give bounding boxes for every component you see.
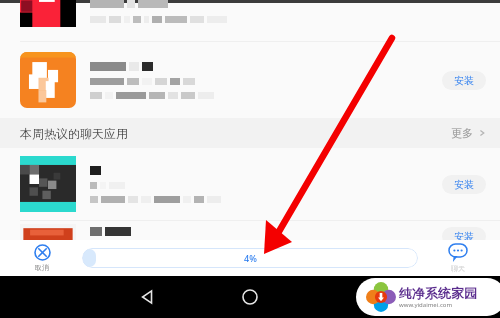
button[interactable]: 4% (82, 248, 418, 268)
button[interactable]: 安装 (0, 42, 500, 118)
staticText: 聊天 (451, 264, 465, 273)
staticText: 安装 (454, 74, 474, 87)
staticText: 安装 (454, 178, 474, 191)
button[interactable]: 安装 (442, 71, 486, 90)
other: Back (140, 289, 156, 305)
staticText: 纯净系统家园 (399, 285, 477, 301)
button[interactable]: 取消 (10, 244, 74, 272)
staticText: 安装 (454, 230, 474, 243)
staticText: 取消 (35, 263, 49, 272)
other: Home (242, 289, 258, 305)
staticText: www.yidaimei.com (399, 301, 452, 309)
button[interactable]: 安装 (0, 148, 500, 220)
staticText: 更多 (451, 126, 473, 140)
staticText: 本周热议的聊天应用 (20, 126, 128, 141)
button[interactable]: 聊天 (426, 244, 490, 273)
button[interactable]: 安装 (0, 221, 500, 240)
button[interactable]: 安装 (442, 227, 486, 246)
other: 聊天 (449, 244, 467, 262)
other: 取消 (34, 244, 51, 261)
other: More (478, 129, 486, 137)
button[interactable]: 安装 (442, 175, 486, 194)
staticText: 4% (244, 252, 257, 264)
button[interactable]: 本周热议的聊天应用 (0, 118, 500, 148)
